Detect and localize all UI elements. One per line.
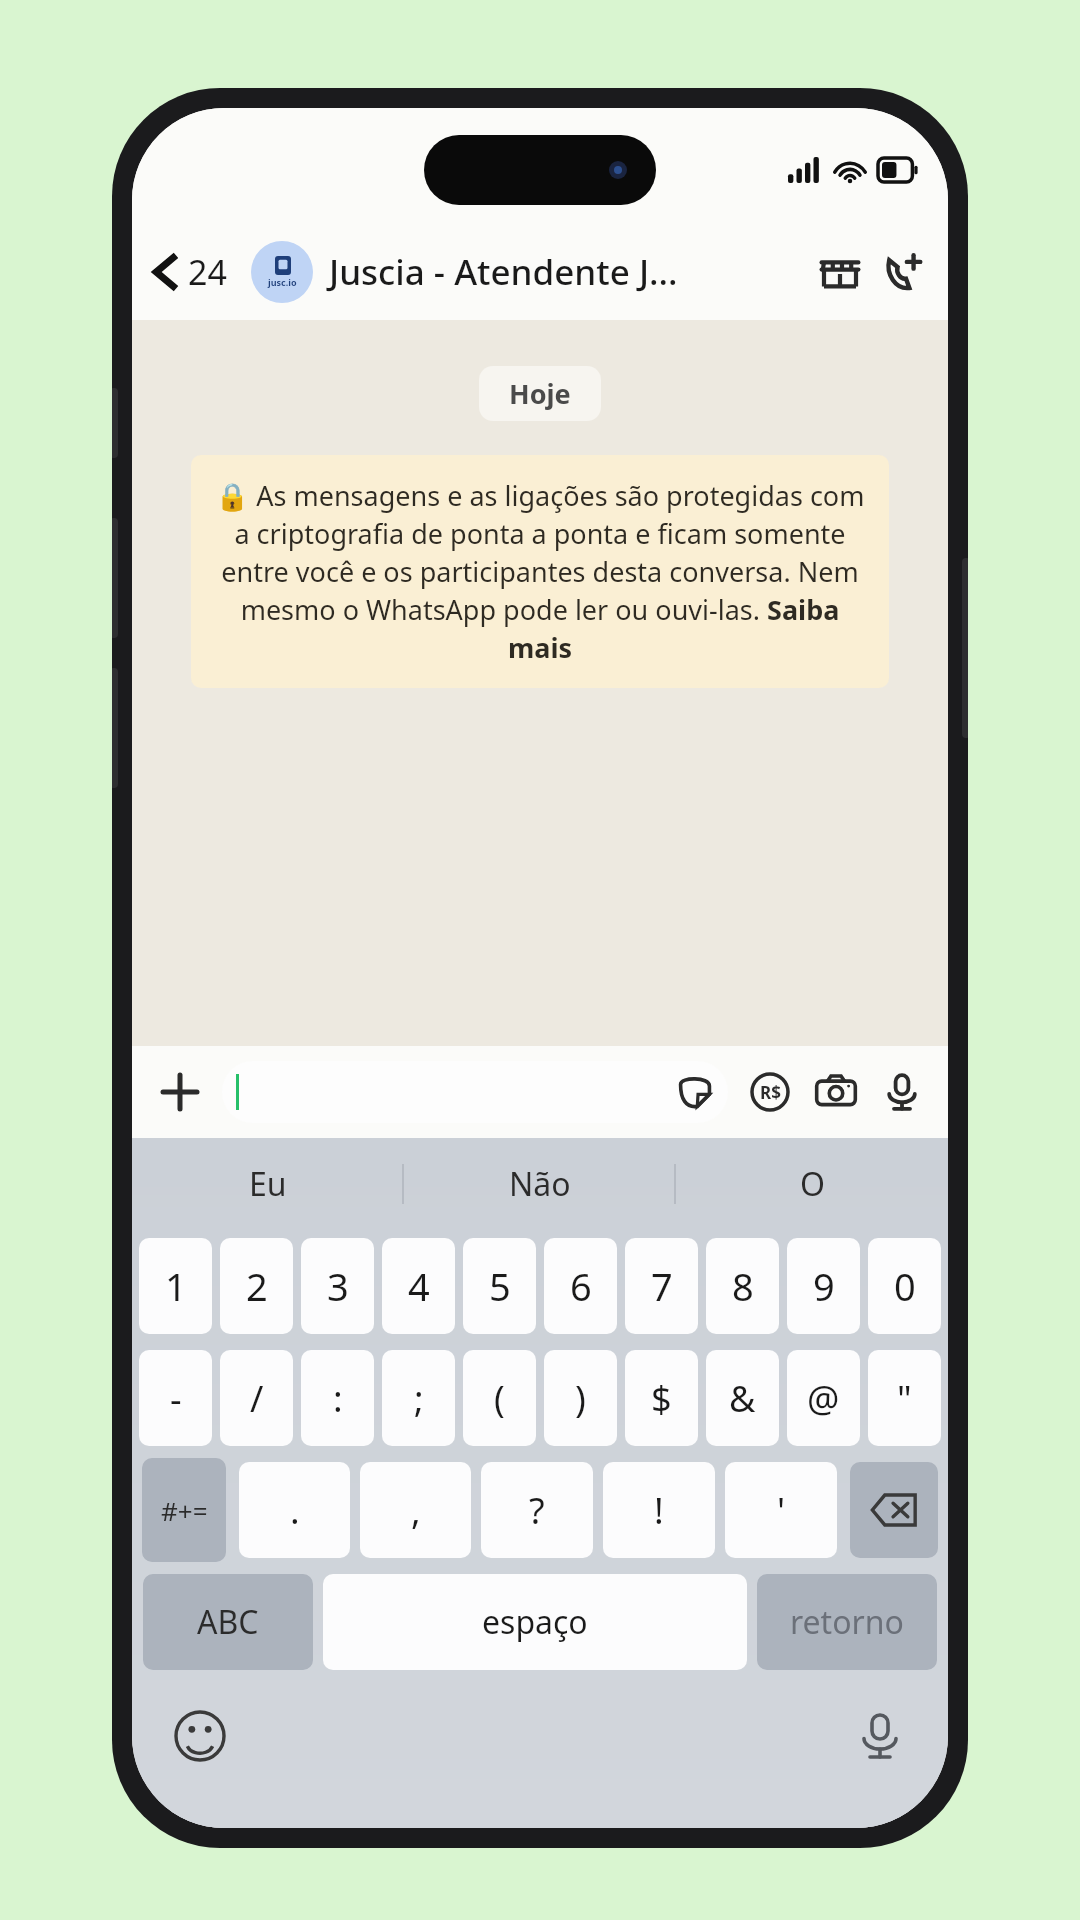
button[interactable]: ABC <box>143 1574 313 1670</box>
button[interactable]: 7 <box>625 1238 698 1334</box>
staticText: O <box>800 1162 825 1206</box>
button[interactable]: 9 <box>787 1238 860 1334</box>
staticText: ! <box>654 1486 664 1535</box>
button[interactable]: - <box>139 1350 212 1446</box>
button[interactable]: ' <box>725 1462 837 1558</box>
staticText: . <box>290 1486 300 1535</box>
staticText: R$ <box>760 1081 781 1104</box>
staticText: : <box>333 1374 343 1423</box>
button[interactable]: Voice message <box>872 1062 932 1122</box>
button[interactable]: 6 <box>544 1238 617 1334</box>
button[interactable]: 4 <box>382 1238 455 1334</box>
staticText: 0 <box>894 1260 916 1312</box>
staticText: jusc.io <box>268 276 297 288</box>
staticText: 1 <box>165 1260 187 1312</box>
staticText: ; <box>414 1374 424 1423</box>
button[interactable]: Camera <box>806 1062 866 1122</box>
button[interactable]: 8 <box>706 1238 779 1334</box>
button[interactable]: ? <box>481 1462 593 1558</box>
button[interactable]: Não <box>404 1138 676 1230</box>
button[interactable]: 2 <box>220 1238 293 1334</box>
staticText: 4 <box>408 1260 430 1312</box>
button[interactable]: 3 <box>301 1238 374 1334</box>
button[interactable]: Contact avatar <box>251 241 313 303</box>
button[interactable]: retorno <box>757 1574 937 1670</box>
button[interactable]: 5 <box>463 1238 536 1334</box>
button[interactable]: . <box>239 1462 350 1558</box>
button[interactable]: Dictation <box>850 1706 910 1766</box>
button[interactable]: Attach <box>148 1060 212 1124</box>
staticText: 6 <box>570 1260 592 1312</box>
button[interactable]: Catalog <box>812 244 868 300</box>
staticText: " <box>897 1374 912 1423</box>
staticText: 3 <box>327 1260 349 1312</box>
button[interactable]: : <box>301 1350 374 1446</box>
button[interactable]: 1 <box>139 1238 212 1334</box>
staticText: #+= <box>161 1493 208 1528</box>
button[interactable]: / <box>220 1350 293 1446</box>
button[interactable]: Payment <box>740 1062 800 1122</box>
button[interactable]: " <box>868 1350 941 1446</box>
staticText: Hoje <box>509 375 571 412</box>
staticText: Não <box>509 1162 571 1206</box>
button[interactable]: Eu <box>132 1138 404 1230</box>
button[interactable]: 🔒 As mensagens e as ligações são protegi… <box>191 455 889 688</box>
button[interactable]: Hoje <box>479 366 601 421</box>
staticText: 9 <box>813 1260 835 1312</box>
staticText: 5 <box>489 1260 511 1312</box>
staticText: 24 <box>188 249 227 295</box>
button[interactable]: ! <box>603 1462 715 1558</box>
staticText: 8 <box>732 1260 754 1312</box>
button[interactable]: Juscia - Atendente J... <box>329 248 804 296</box>
button[interactable]: 0 <box>868 1238 941 1334</box>
staticText: ) <box>575 1374 586 1423</box>
button[interactable]: @ <box>787 1350 860 1446</box>
staticText: 7 <box>651 1260 673 1312</box>
button[interactable]: ( <box>463 1350 536 1446</box>
button[interactable]: espaço <box>323 1574 747 1670</box>
staticText: ' <box>777 1486 786 1535</box>
staticText: retorno <box>790 1600 904 1644</box>
button[interactable]: ) <box>544 1350 617 1446</box>
staticText: - <box>170 1374 182 1423</box>
button[interactable]: O <box>676 1138 948 1230</box>
staticText: 2 <box>246 1260 268 1312</box>
button[interactable]: Emoji <box>170 1706 230 1766</box>
staticText: espaço <box>482 1600 588 1644</box>
staticText: , <box>411 1486 421 1535</box>
button[interactable]: Back, 24 unread <box>146 243 233 301</box>
staticText: ( <box>494 1374 505 1423</box>
button[interactable]: ; <box>382 1350 455 1446</box>
button[interactable]: Voice call <box>878 244 934 300</box>
button[interactable]: , <box>360 1462 471 1558</box>
staticText: & <box>729 1374 756 1423</box>
staticText: ABC <box>197 1600 259 1644</box>
staticText: Eu <box>249 1162 287 1206</box>
staticText: $ <box>651 1374 672 1423</box>
button[interactable]: $ <box>625 1350 698 1446</box>
button[interactable]: #+= <box>142 1458 226 1562</box>
button[interactable] <box>222 1061 728 1123</box>
staticText: @ <box>807 1374 840 1423</box>
button[interactable]: & <box>706 1350 779 1446</box>
staticText: / <box>250 1374 264 1423</box>
staticText: 🔒 As mensagens e as ligações são protegi… <box>215 477 865 666</box>
button[interactable]: Backspace <box>850 1462 938 1558</box>
staticText: ? <box>529 1486 545 1535</box>
